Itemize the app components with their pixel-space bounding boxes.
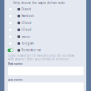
staticText: Facebook bbox=[21, 14, 33, 18]
button[interactable]: Twitter bbox=[5, 33, 86, 40]
staticText: iCloud bbox=[21, 21, 31, 25]
staticText: Twitter bbox=[21, 35, 30, 38]
button[interactable]: iCloud bbox=[5, 19, 86, 26]
staticText: Remember me bbox=[21, 49, 41, 52]
staticText: First name bbox=[8, 62, 23, 66]
button[interactable]: Remember me bbox=[5, 47, 86, 54]
staticText: iCloud bbox=[21, 28, 31, 31]
button[interactable]: iCloud bbox=[5, 26, 86, 33]
staticText: Telegram bbox=[21, 42, 33, 45]
staticText: Help choose the way to deliver code bbox=[13, 1, 65, 5]
staticText: Code is valid for 10 minutes only. Do no… bbox=[8, 54, 75, 57]
button[interactable]: Text field bbox=[8, 82, 84, 91]
staticText: with anyone. Enter your details to conti… bbox=[8, 57, 70, 61]
staticText: Last name bbox=[8, 78, 23, 81]
button[interactable]: Telegram bbox=[5, 40, 86, 47]
button[interactable]: Discord bbox=[5, 6, 86, 13]
staticText: Discord bbox=[21, 7, 31, 11]
button[interactable]: Facebook bbox=[5, 13, 86, 19]
